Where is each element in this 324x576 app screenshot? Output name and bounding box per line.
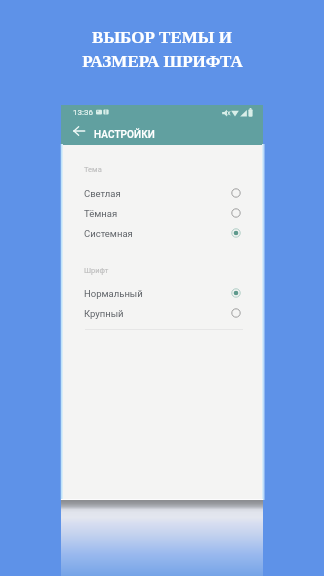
button[interactable]: Нормальный <box>61 283 263 303</box>
staticText: 13:36 <box>73 108 93 117</box>
staticText: РАЗМЕРА ШРИФТА <box>82 52 243 71</box>
staticText: Крупный <box>84 308 124 319</box>
staticText: Тёмная <box>84 208 118 219</box>
staticText: ВЫБОР ТЕМЫ И <box>92 28 232 47</box>
staticText: Нормальный <box>84 288 143 299</box>
button[interactable]: Крупный <box>61 303 263 323</box>
staticText: НАСТРОЙКИ <box>94 129 156 141</box>
staticText: Системная <box>84 228 133 239</box>
button[interactable]: Тёмная <box>61 203 263 223</box>
staticText: Тема <box>84 165 102 174</box>
button[interactable]: Светлая <box>61 183 263 203</box>
staticText: Шрифт <box>84 266 109 275</box>
button[interactable]: Системная <box>61 223 263 243</box>
button[interactable]: Back <box>68 120 89 142</box>
staticText: Светлая <box>84 188 121 199</box>
